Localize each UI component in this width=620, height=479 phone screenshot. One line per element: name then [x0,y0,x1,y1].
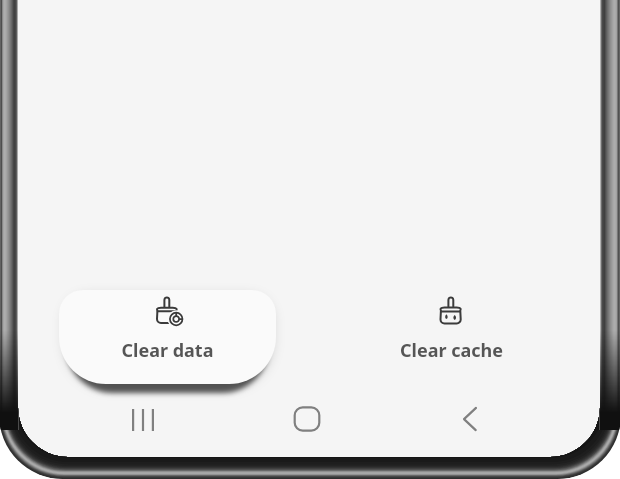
button[interactable]: Back [440,395,500,443]
button[interactable]: Home [277,395,337,443]
staticText: Clear cache [343,338,560,363]
staticText: Clear data [59,338,276,363]
button[interactable]: Clear data [59,290,276,384]
button[interactable]: Clear cache [343,290,560,384]
button[interactable]: Recents [113,395,173,443]
